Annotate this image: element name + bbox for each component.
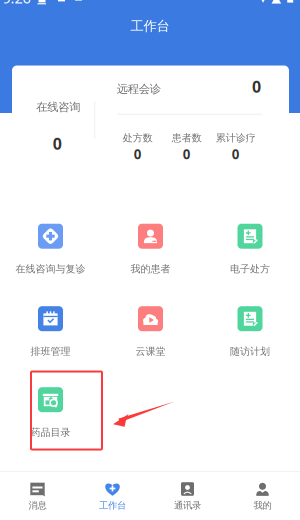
button[interactable]: 通讯录 bbox=[150, 471, 225, 520]
button[interactable]: 工作台 bbox=[75, 471, 150, 520]
button[interactable]: 随访计划 bbox=[202, 305, 298, 358]
staticText: 患者数 bbox=[172, 132, 202, 144]
button[interactable]: 我的患者 bbox=[102, 223, 198, 276]
staticText: 0 bbox=[134, 145, 142, 163]
staticText: 远程会诊 bbox=[117, 82, 161, 96]
button[interactable]: 在线咨询与复诊 bbox=[2, 223, 98, 276]
button[interactable]: 药品目录 bbox=[2, 386, 98, 439]
staticText: 我的 bbox=[253, 499, 271, 511]
staticText: 0 bbox=[252, 76, 261, 97]
button[interactable]: 消息 bbox=[0, 471, 75, 520]
staticText: 药品目录 bbox=[30, 426, 70, 439]
staticText: 云课堂 bbox=[135, 345, 165, 358]
staticText: 9:26 bbox=[2, 0, 30, 8]
staticText: 0 bbox=[183, 145, 191, 163]
staticText: 排班管理 bbox=[30, 345, 70, 358]
staticText: 工作台 bbox=[99, 499, 126, 511]
staticText: 电子处方 bbox=[230, 263, 270, 275]
staticText: 通讯录 bbox=[174, 499, 201, 511]
staticText: 处方数 bbox=[123, 132, 153, 144]
staticText: 消息 bbox=[28, 499, 46, 511]
staticText: 随访计划 bbox=[230, 345, 270, 358]
staticText: 在线咨询与复诊 bbox=[15, 263, 85, 275]
staticText: 累计诊疗 bbox=[216, 132, 256, 144]
staticText: 0 bbox=[232, 145, 240, 163]
staticText: 在线咨询 bbox=[36, 100, 80, 114]
staticText: 我的患者 bbox=[130, 263, 170, 275]
staticText: 工作台 bbox=[130, 18, 169, 34]
button[interactable]: 云课堂 bbox=[102, 305, 198, 358]
button[interactable]: 我的 bbox=[225, 471, 300, 520]
staticText: 0 bbox=[53, 133, 62, 154]
button[interactable]: 排班管理 bbox=[2, 305, 98, 358]
button[interactable]: 电子处方 bbox=[202, 223, 298, 276]
